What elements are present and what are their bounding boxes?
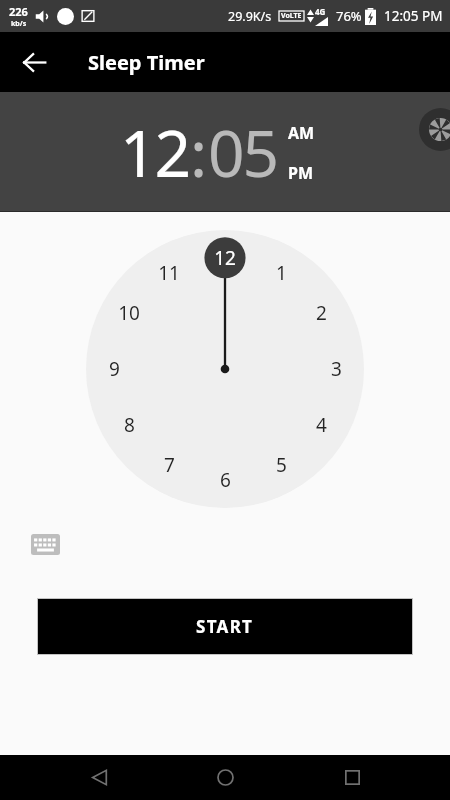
button[interactable]: Screenshot — [419, 108, 450, 151]
staticText: 1 — [276, 260, 287, 286]
staticText: 11 — [158, 260, 180, 286]
staticText: 12:05 PM — [384, 7, 443, 25]
button[interactable]: Back — [71, 755, 127, 800]
staticText: VoLTE — [281, 11, 302, 21]
staticText: 10 — [118, 300, 140, 326]
staticText: AM — [288, 122, 315, 144]
staticText: 4 — [316, 412, 327, 438]
button[interactable]: 12 — [120, 109, 190, 196]
staticText: 7 — [164, 452, 175, 478]
staticText: 12 — [214, 245, 236, 271]
staticText: 5 — [276, 452, 287, 478]
staticText: 3 — [331, 356, 342, 382]
staticText: 29.9K/s — [228, 8, 272, 25]
staticText: Sleep Timer — [88, 49, 205, 76]
button[interactable]: Recent apps — [324, 755, 380, 800]
staticText: PM — [288, 162, 314, 184]
button[interactable]: Home — [197, 755, 253, 800]
staticText: : — [190, 109, 208, 196]
staticText: kb/s — [11, 19, 27, 29]
staticText: 9 — [109, 356, 120, 382]
staticText: 2 — [316, 300, 327, 326]
button[interactable]: AM — [288, 122, 315, 144]
staticText: 76% — [336, 7, 362, 25]
button[interactable]: PM — [288, 162, 314, 184]
button[interactable]: Navigate up — [10, 38, 58, 86]
button[interactable]: Switch to text input — [28, 530, 62, 558]
staticText: 6 — [220, 467, 231, 493]
button[interactable]: START — [38, 599, 412, 654]
staticText: START — [196, 615, 254, 638]
staticText: 4G — [315, 6, 326, 17]
button[interactable]: 05 — [208, 109, 278, 196]
staticText: 8 — [124, 412, 135, 438]
button[interactable]: 12 — [86, 230, 364, 508]
staticText: 226 — [9, 4, 28, 19]
